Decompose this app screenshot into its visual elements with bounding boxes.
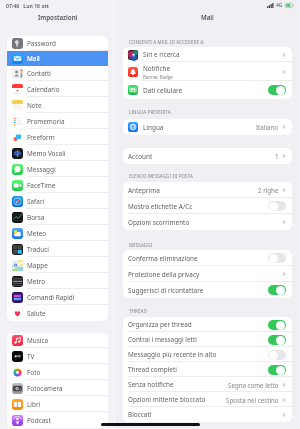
button[interactable]: Contrai i messaggi letti [123,332,292,347]
button[interactable]: Messaggio più recente in alto [123,347,292,362]
button[interactable]: Traduci [7,241,108,257]
staticText: Promemoria [27,117,65,126]
staticText: Contrai i messaggi letti [128,335,197,344]
button[interactable]: Metro [7,273,108,289]
staticText: Italiano [256,123,279,131]
staticText: Senza notifiche [128,380,174,389]
button[interactable]: Lingua [123,119,292,135]
staticText: Salute [27,309,46,318]
staticText: Mail [201,13,214,21]
button[interactable]: Salute [7,305,108,321]
button[interactable]: Bloccati [123,407,292,422]
staticText: 4G [276,2,283,9]
staticText: Lingua [143,123,164,132]
button[interactable]: Suggerisci di ricontattare [123,282,292,298]
staticText: Messaggi [27,165,56,174]
staticText: Foto [27,368,41,377]
button[interactable]: Anteprima [123,182,292,198]
button[interactable]: Attivato [268,335,286,345]
button[interactable]: Opzioni scorrimento [123,214,292,230]
button[interactable]: Password [7,36,108,51]
button[interactable]: Attivato [268,285,286,295]
button[interactable]: Mappe [7,257,108,273]
staticText: 2 righe [258,186,279,194]
staticText: Metro [27,277,46,286]
button[interactable]: Disattivato [268,253,286,263]
staticText: Organizza per thread [128,320,192,329]
button[interactable]: Senza notifiche [123,377,292,392]
button[interactable]: Organizza per thread [123,317,292,332]
button[interactable]: Podcast [7,412,108,428]
staticText: Note [27,101,42,110]
staticText: Musica [27,336,49,345]
button[interactable]: Note [7,97,108,113]
button[interactable]: Disattivato [268,201,286,211]
button[interactable]: Mostra etichette A/Cc [123,198,292,214]
button[interactable]: Notifiche [123,62,292,81]
button[interactable]: Conferma eliminazione [123,250,292,266]
button[interactable]: Opzioni mittente bloccato [123,392,292,407]
button[interactable]: Foto [7,364,108,380]
button[interactable]: Meteo [7,225,108,241]
staticText: 07:46 Lun 16 ott [6,2,49,9]
staticText: Anteprima [128,186,160,195]
button[interactable]: Calendario [7,81,108,97]
button[interactable]: FaceTime [7,177,108,193]
button[interactable]: Freeform [7,129,108,145]
button[interactable]: Attivato [268,85,286,95]
staticText: Mostra etichette A/Cc [128,202,193,211]
staticText: MESSAGGI [129,242,153,248]
button[interactable]: Protezione della privacy [123,266,292,282]
button[interactable]: Libri [7,396,108,412]
button[interactable]: Borsa [7,209,108,225]
staticText: Suggerisci di ricontattare [128,286,204,295]
button[interactable]: Dati cellulare [123,81,292,99]
staticText: Traduci [27,245,49,254]
staticText: Account [128,152,153,161]
button[interactable]: Attivato [268,365,286,375]
staticText: CONSENTI A MAIL DI ACCEDERE A: [129,39,205,45]
button[interactable]: Disattivato [268,350,286,360]
button[interactable]: Attivato [268,320,286,330]
button[interactable]: TV [7,348,108,364]
staticText: Podcast [27,416,51,425]
staticText: Fotocamera [27,384,63,393]
staticText: Segna come letto [228,381,279,389]
staticText: Meteo [27,229,47,238]
staticText: Libri [27,400,41,409]
staticText: Password [27,39,56,48]
button[interactable]: Thread completi [123,362,292,377]
button[interactable]: Musica [7,333,108,348]
staticText: Opzioni scorrimento [128,218,190,227]
staticText: Impostazioni [38,13,78,21]
staticText: Safari [27,197,45,206]
staticText: Freeform [27,133,55,142]
button[interactable]: Contatti [7,66,108,81]
staticText: Mail [27,54,40,63]
button[interactable]: Memo Vocali [7,145,108,161]
staticText: THREAD [129,308,147,314]
staticText: Thread completi [128,365,177,374]
staticText: Calendario [27,85,60,94]
staticText: Notifiche [143,64,171,73]
button[interactable]: Comandi Rapidi [7,289,108,305]
staticText: Borsa [27,213,45,222]
button[interactable]: Safari [7,193,108,209]
button[interactable]: Mail [7,51,108,66]
button[interactable]: Promemoria [7,113,108,129]
button[interactable]: Fotocamera [7,380,108,396]
staticText: TV [27,352,35,361]
staticText: 1 [275,152,279,160]
button[interactable]: Siri e ricerca [123,47,292,62]
staticText: Dati cellulare [143,86,183,95]
staticText: Conferma eliminazione [128,254,198,263]
button[interactable]: Account [123,148,292,164]
staticText: Banner, Badge [143,74,173,80]
staticText: ELENCO MESSAGGI DI POSTA [129,173,193,179]
staticText: Comandi Rapidi [27,293,75,302]
staticText: Messaggio più recente in alto [128,350,217,359]
staticText: Opzioni mittente bloccato [128,395,206,404]
staticText: Protezione della privacy [128,270,200,279]
staticText: FaceTime [27,181,56,190]
button[interactable]: Messaggi [7,161,108,177]
